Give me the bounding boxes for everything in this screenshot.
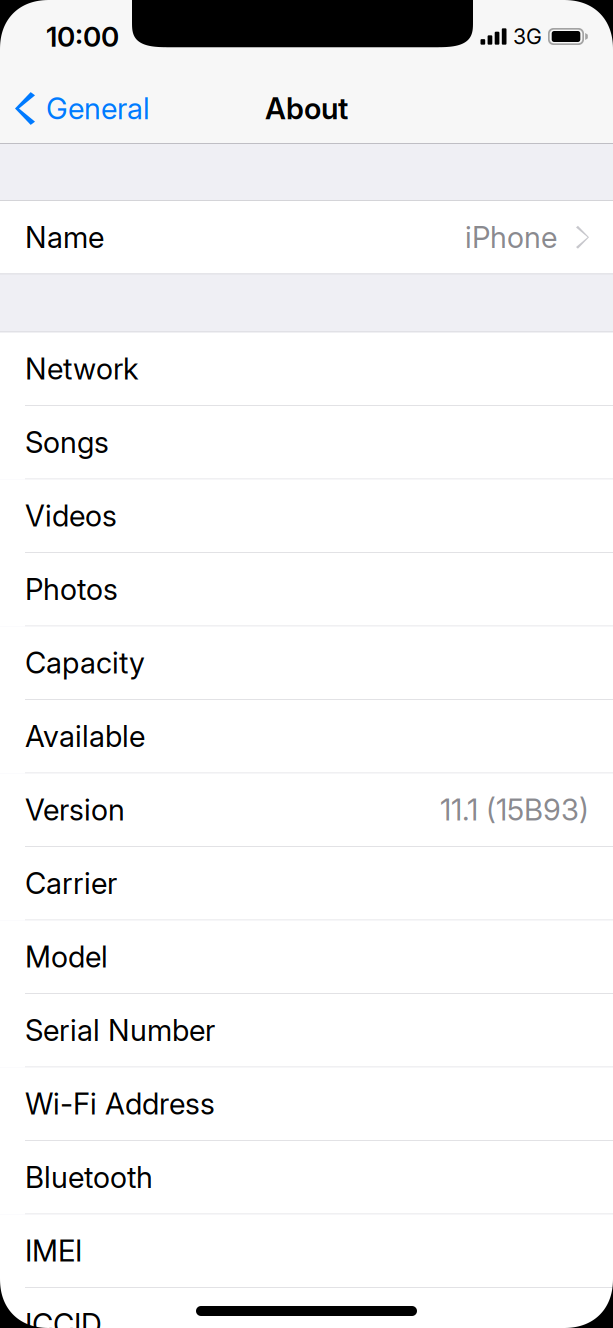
staticText: Available: [25, 718, 145, 754]
staticText: Songs: [25, 424, 109, 460]
button[interactable]: Bluetooth: [0, 1141, 613, 1214]
staticText: Model: [25, 939, 108, 974]
button[interactable]: Carrier: [0, 847, 613, 920]
staticText: Videos: [25, 498, 117, 533]
staticText: 11.1 (15B93): [440, 792, 589, 827]
staticText: Bluetooth: [25, 1159, 153, 1195]
staticText: 3G: [513, 24, 542, 49]
button[interactable]: IMEI: [0, 1214, 613, 1288]
button[interactable]: Network: [0, 332, 613, 406]
staticText: iPhone: [465, 219, 557, 255]
staticText: ICCID: [25, 1306, 102, 1328]
button[interactable]: Songs: [0, 406, 613, 479]
button[interactable]: Wi-Fi Address: [0, 1067, 613, 1141]
staticText: Photos: [25, 571, 118, 607]
button[interactable]: Videos: [0, 479, 613, 553]
staticText: Serial Number: [25, 1012, 215, 1048]
button[interactable]: ICCID: [0, 1288, 613, 1328]
button[interactable]: Serial Number: [0, 994, 613, 1067]
button[interactable]: Version: [0, 773, 613, 847]
staticText: Network: [25, 351, 139, 386]
button[interactable]: General: [0, 73, 162, 144]
button[interactable]: Available: [0, 700, 613, 773]
button[interactable]: Model: [0, 920, 613, 994]
button[interactable]: Photos: [0, 553, 613, 626]
staticText: 10:00: [46, 20, 119, 53]
staticText: Wi-Fi Address: [25, 1086, 215, 1121]
staticText: About: [265, 91, 348, 126]
staticText: General: [46, 91, 150, 126]
staticText: IMEI: [25, 1233, 82, 1268]
staticText: Version: [25, 792, 125, 827]
staticText: Carrier: [25, 865, 117, 901]
button[interactable]: Capacity: [0, 626, 613, 700]
button[interactable]: Name: [0, 201, 613, 273]
staticText: Capacity: [25, 645, 145, 680]
staticText: Name: [25, 219, 104, 255]
